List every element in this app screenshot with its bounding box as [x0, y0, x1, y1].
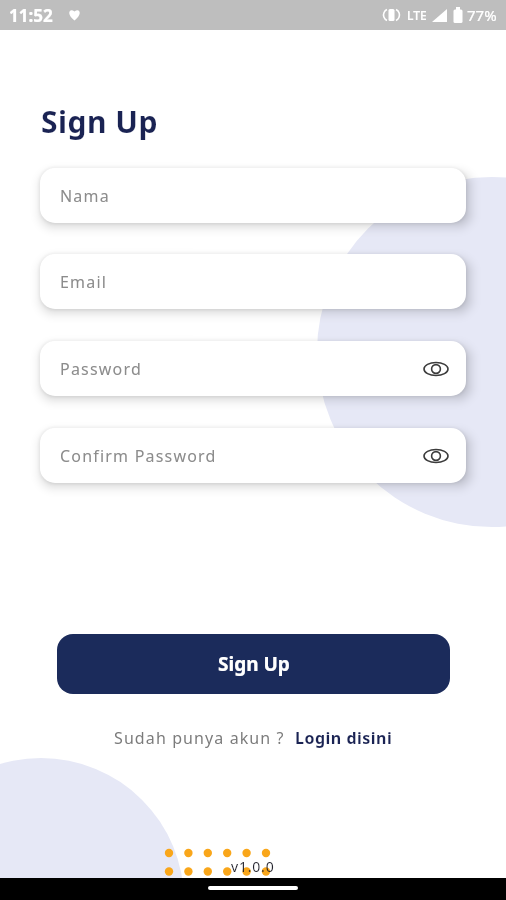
staticText: 11:52: [9, 4, 53, 27]
staticText: Sign Up: [218, 651, 290, 677]
button[interactable]: Email: [40, 254, 466, 309]
button[interactable]: Confirm Password: [40, 428, 466, 483]
staticText: Confirm Password: [60, 445, 217, 467]
staticText: LTE: [407, 7, 427, 23]
staticText: v1.0.0: [231, 857, 275, 876]
button[interactable]: Password: [40, 341, 466, 396]
button[interactable]: Nama: [40, 168, 466, 223]
button[interactable]: Sign Up: [57, 634, 450, 694]
staticText: Sign Up: [41, 101, 158, 142]
staticText: Password: [60, 358, 142, 380]
staticText: 77%: [467, 5, 497, 25]
staticText: Sudah punya akun ?: [114, 727, 285, 749]
button[interactable]: Login disini: [295, 727, 393, 749]
staticText: Email: [60, 271, 108, 293]
staticText: Login disini: [295, 727, 393, 749]
staticText: Nama: [60, 185, 110, 207]
